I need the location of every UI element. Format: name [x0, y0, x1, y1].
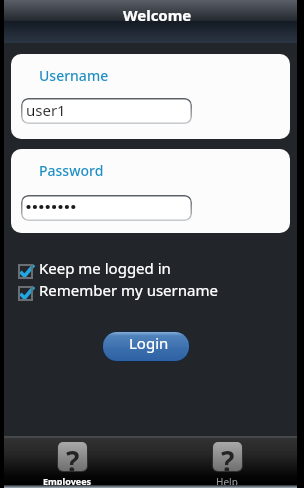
button[interactable]: Keep me logged in	[18, 258, 248, 280]
staticText: user1	[26, 100, 66, 120]
button[interactable]	[150, 436, 297, 488]
staticText: Remember my username	[39, 280, 218, 300]
button[interactable]	[21, 195, 192, 221]
staticText: Employees	[43, 475, 92, 487]
staticText: Welcome	[123, 5, 192, 25]
staticText: Login	[129, 333, 169, 353]
staticText: ?	[221, 442, 235, 471]
staticText: Username	[39, 66, 109, 85]
staticText: Keep me logged in	[39, 258, 171, 278]
button[interactable]: Remember my username	[18, 280, 248, 302]
staticText: ?	[66, 442, 80, 471]
staticText: Password	[39, 161, 104, 180]
button[interactable]: Login	[103, 332, 189, 361]
button[interactable]: user1	[21, 98, 192, 124]
staticText: Help	[216, 475, 238, 488]
button[interactable]	[4, 436, 150, 488]
